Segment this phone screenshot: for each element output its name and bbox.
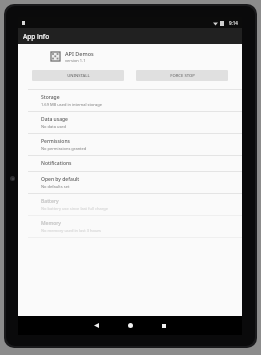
staticText: Battery — [41, 198, 59, 205]
button[interactable]: Storage — [18, 90, 242, 112]
staticText: No memory used in last 3 hours — [41, 228, 102, 233]
staticText: 1.69 MB used in internal storage — [41, 102, 102, 107]
staticText: version 1.1 — [65, 58, 86, 63]
staticText: No data used — [41, 124, 67, 129]
staticText: UNINSTALL — [67, 73, 90, 79]
staticText: No defaults set — [41, 184, 70, 189]
staticText: Permissions — [41, 138, 70, 145]
button[interactable]: Back — [85, 316, 107, 335]
staticText: API Demos — [65, 50, 94, 57]
button[interactable]: Open by default — [18, 172, 242, 194]
button[interactable]: Memory — [18, 216, 242, 238]
staticText: Data usage — [41, 116, 68, 123]
button[interactable]: Permissions — [18, 134, 242, 156]
button[interactable]: API Demos — [18, 48, 242, 65]
staticText: Memory — [41, 220, 62, 227]
button[interactable]: FORCE STOP — [136, 70, 228, 81]
staticText: Storage — [41, 94, 60, 101]
staticText: FORCE STOP — [170, 73, 195, 79]
staticText: No battery use since last full charge — [41, 206, 108, 211]
staticText: No permissions granted — [41, 146, 87, 151]
button[interactable]: Battery — [18, 194, 242, 216]
button[interactable]: UNINSTALL — [32, 70, 124, 81]
button[interactable]: Notifications — [18, 156, 242, 172]
staticText: Open by default — [41, 176, 80, 183]
button[interactable]: Data usage — [18, 112, 242, 134]
button[interactable]: Home — [119, 316, 141, 335]
staticText: App info — [23, 32, 50, 41]
button[interactable]: Recent apps — [153, 316, 175, 335]
staticText: Notifications — [41, 160, 72, 167]
staticText: 9:14 — [229, 20, 238, 26]
